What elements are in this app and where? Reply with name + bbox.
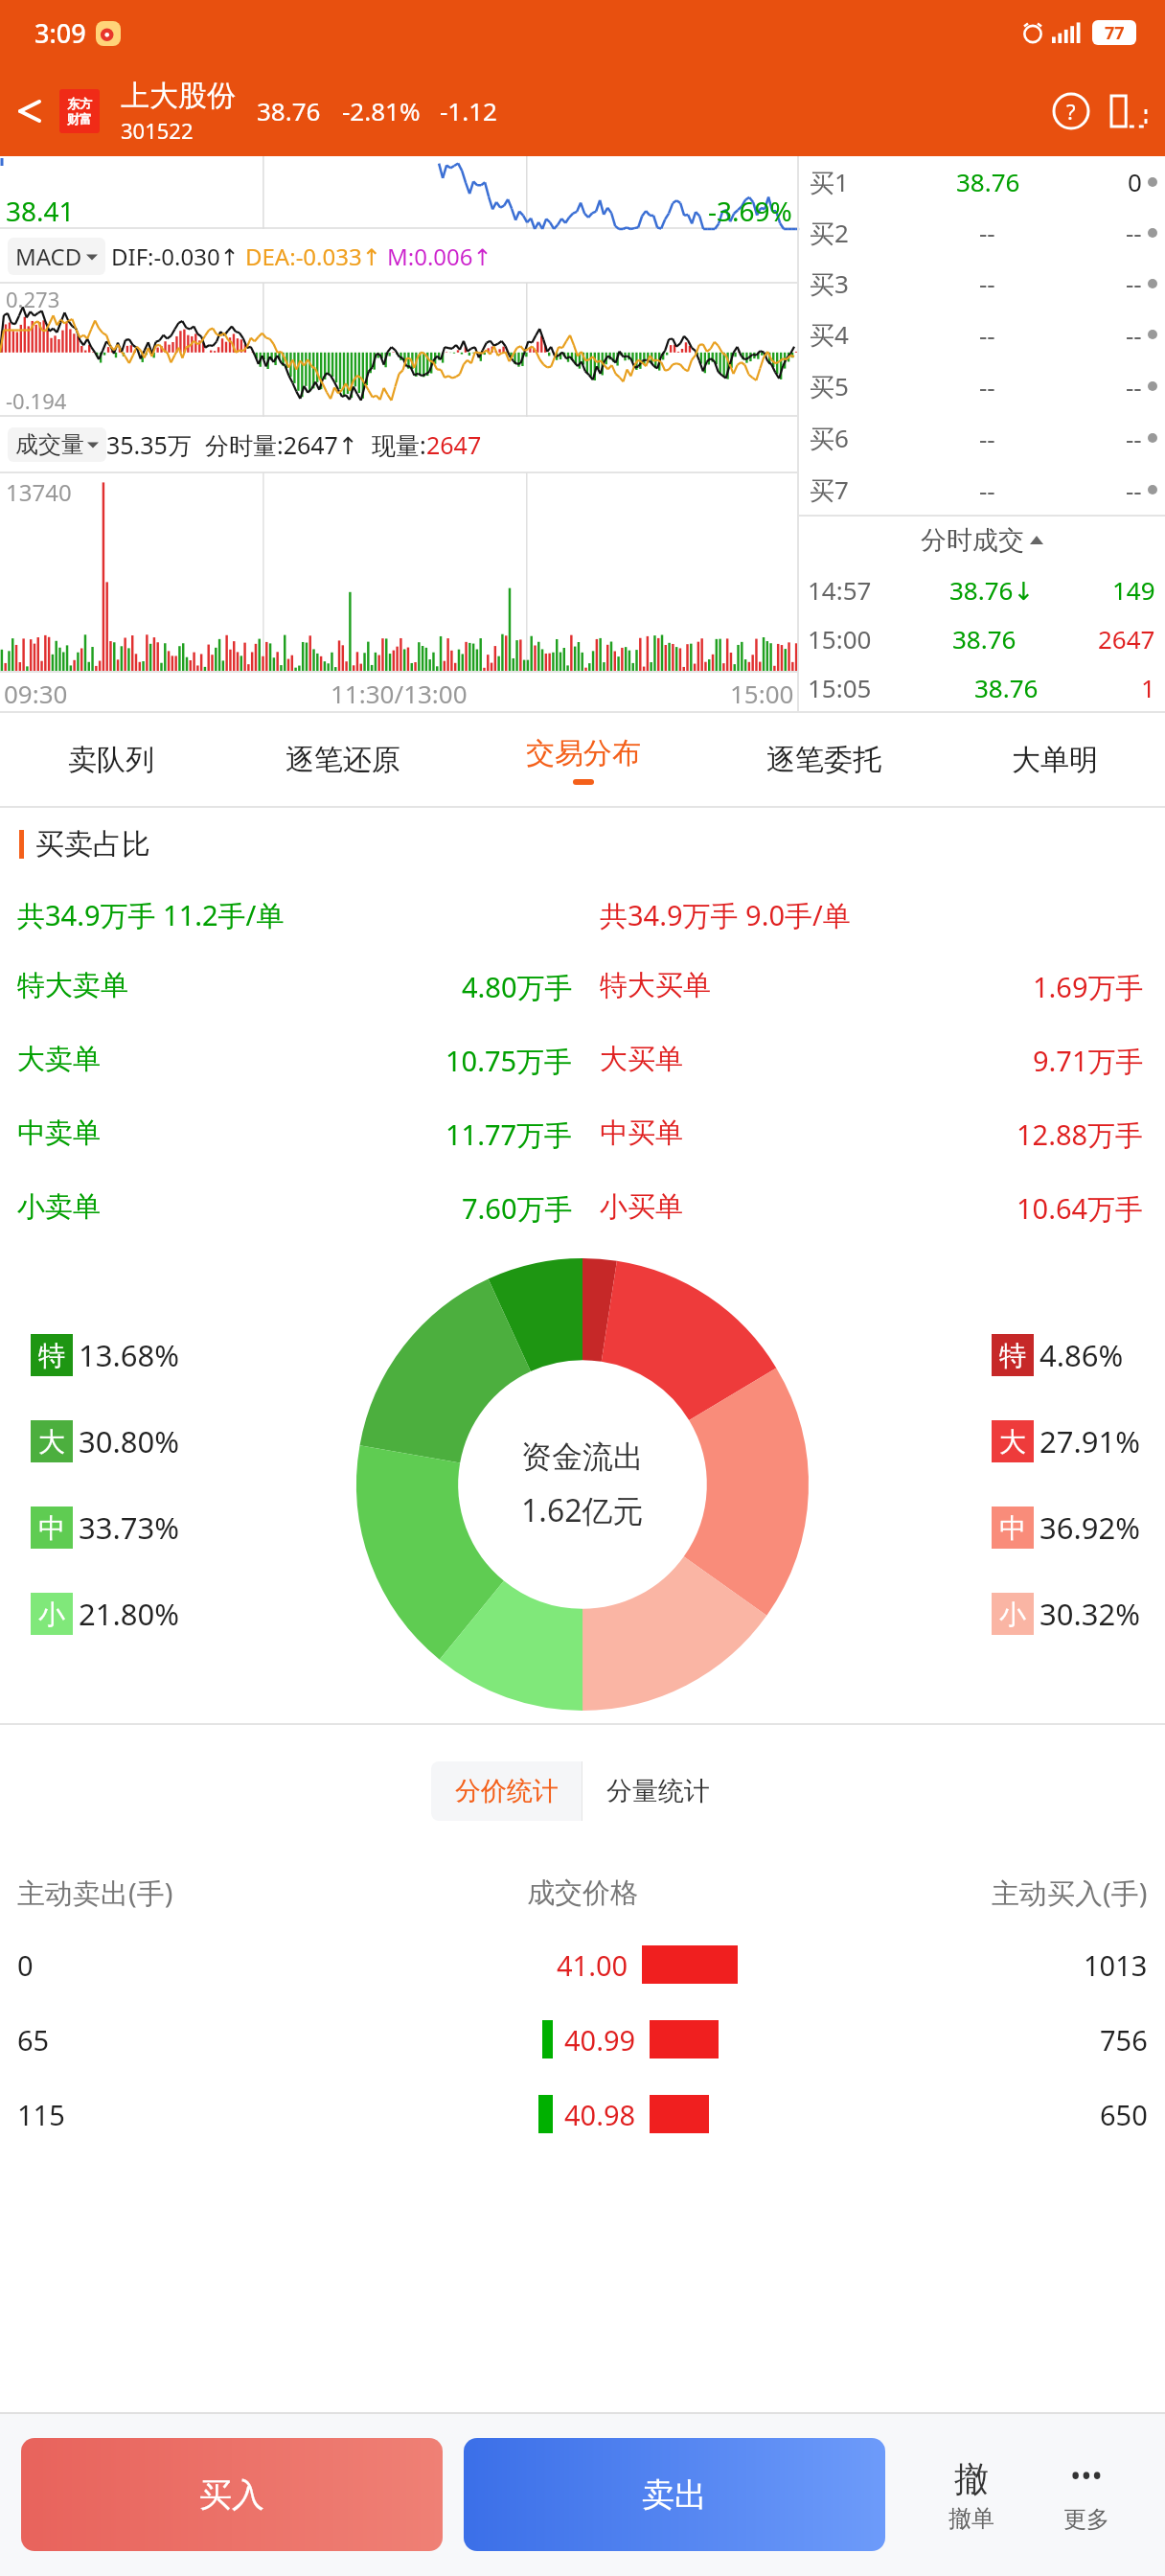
staticText: 买7 [810, 472, 849, 507]
staticText: 38.76↓ [949, 573, 1035, 607]
staticText: 分时成交 [921, 524, 1024, 557]
staticText: 小卖单 [17, 1189, 101, 1225]
button[interactable]: 买7 [810, 464, 1157, 516]
button[interactable]: ••• [1029, 2438, 1144, 2551]
staticText: 21.80% [79, 1594, 179, 1634]
staticText: 0.273 [6, 285, 60, 313]
button[interactable]: Help [1044, 84, 1098, 138]
button[interactable]: MACD [15, 241, 98, 272]
button[interactable]: Landscape [1102, 84, 1155, 138]
staticText: 38.76 [257, 94, 321, 127]
staticText: 11.77万手 [445, 1115, 573, 1154]
button[interactable]: 买1 [810, 156, 1157, 207]
button[interactable]: 买5 [810, 360, 1157, 412]
staticText: -- [1126, 422, 1142, 455]
staticText: 卖队列 [68, 742, 154, 778]
staticText: 4.86% [1039, 1335, 1124, 1375]
button[interactable]: 分时成交 [798, 516, 1165, 565]
staticText: 7.60万手 [462, 1189, 573, 1228]
staticText: 30.80% [79, 1421, 179, 1461]
staticText: 中 [999, 1511, 1026, 1545]
staticText: 主动买入(手) [992, 1874, 1148, 1912]
button[interactable]: 15:00 [808, 614, 1155, 663]
button[interactable]: 交易分布 [463, 712, 703, 808]
button[interactable]: 撤 [914, 2438, 1029, 2551]
staticText: 大单明 [1012, 742, 1098, 778]
staticText: 756 [1100, 2021, 1148, 2058]
staticText: 14:57 [808, 573, 872, 607]
staticText: 40.99 [564, 2021, 636, 2058]
button[interactable]: 14:57 [808, 565, 1155, 614]
staticText: -0.194 [6, 386, 67, 415]
staticText: 买4 [810, 317, 849, 352]
staticText: 中买单 [600, 1115, 683, 1151]
staticText: -3.69% [708, 193, 792, 229]
button[interactable]: 买6 [810, 412, 1157, 464]
button[interactable]: 大单明 [944, 712, 1165, 808]
staticText: 共34.9万手 11.2手/单 [17, 896, 285, 934]
staticText: -- [979, 473, 995, 507]
staticText: 38.76 [974, 671, 1039, 704]
staticText: 主动卖出(手) [17, 1874, 173, 1912]
staticText: 13740 [6, 476, 72, 508]
staticText: 特大卖单 [17, 968, 128, 1003]
button[interactable]: 65 [0, 2002, 1165, 2077]
staticText: -- [979, 370, 995, 403]
button[interactable]: 卖队列 [0, 712, 222, 808]
staticText: -- [1126, 370, 1142, 403]
staticText: 38.76 [952, 622, 1017, 655]
staticText: 买5 [810, 369, 849, 403]
staticText: 41.00 [557, 1946, 628, 1984]
staticText: 大 [999, 1425, 1026, 1459]
staticText: M:0.006↑ [387, 241, 492, 272]
button[interactable]: 分价统计 [431, 1761, 582, 1821]
button[interactable]: 卖出 [464, 2438, 885, 2551]
staticText: 0 [1128, 165, 1142, 198]
staticText: 财富 [67, 111, 92, 126]
button[interactable]: 买3 [810, 258, 1157, 309]
staticText: 4.80万手 [462, 968, 573, 1006]
staticText: 买入 [199, 2474, 264, 2516]
staticText: 共34.9万手 9.0手/单 [600, 896, 851, 934]
staticText: 更多 [1063, 2505, 1109, 2534]
staticText: 15:00 [730, 677, 794, 710]
staticText: 65 [17, 2021, 142, 2058]
staticText: 买6 [810, 421, 849, 455]
button[interactable]: 买4 [810, 309, 1157, 360]
button[interactable]: 买入 [21, 2438, 443, 2551]
button[interactable]: Back [0, 65, 59, 156]
staticText: 中卖单 [17, 1115, 101, 1151]
staticText: 35.35万 [106, 428, 192, 461]
staticText: -- [1126, 216, 1142, 249]
staticText: 10.64万手 [1017, 1189, 1144, 1228]
staticText: 1013 [1084, 1946, 1148, 1984]
staticText: 小买单 [600, 1189, 683, 1225]
staticText: 2647 [426, 428, 482, 461]
staticText: 0 [17, 1946, 142, 1984]
staticText: 650 [1100, 2096, 1148, 2133]
staticText: DEA:-0.033↑ [245, 241, 381, 272]
button[interactable]: 115 [0, 2077, 1165, 2151]
staticText: 分量统计 [606, 1775, 710, 1807]
button[interactable]: 15:05 [808, 663, 1155, 712]
button[interactable]: 买2 [810, 207, 1157, 258]
button[interactable]: 逐笔还原 [222, 712, 463, 808]
staticText: 13.68% [79, 1335, 179, 1375]
staticText: -- [979, 422, 995, 455]
staticText: 撤单 [948, 2504, 994, 2533]
button[interactable]: 逐笔委托 [703, 712, 944, 808]
staticText: ••• [1070, 2456, 1103, 2495]
staticText: 大卖单 [17, 1042, 101, 1077]
button[interactable]: 成交量 [15, 430, 99, 459]
button[interactable]: 分量统计 [582, 1761, 734, 1821]
button[interactable]: 0 [0, 1927, 1165, 2002]
staticText: -- [1126, 318, 1142, 352]
staticText: 特大买单 [600, 968, 711, 1003]
staticText: 15:00 [808, 622, 872, 655]
staticText: 149 [1112, 573, 1155, 607]
staticText: 12.88万手 [1017, 1115, 1144, 1154]
staticText: 中 [38, 1511, 65, 1545]
staticText: -- [1126, 266, 1142, 300]
staticText: 11:30/13:00 [331, 677, 468, 710]
staticText: 77 [1105, 21, 1125, 45]
